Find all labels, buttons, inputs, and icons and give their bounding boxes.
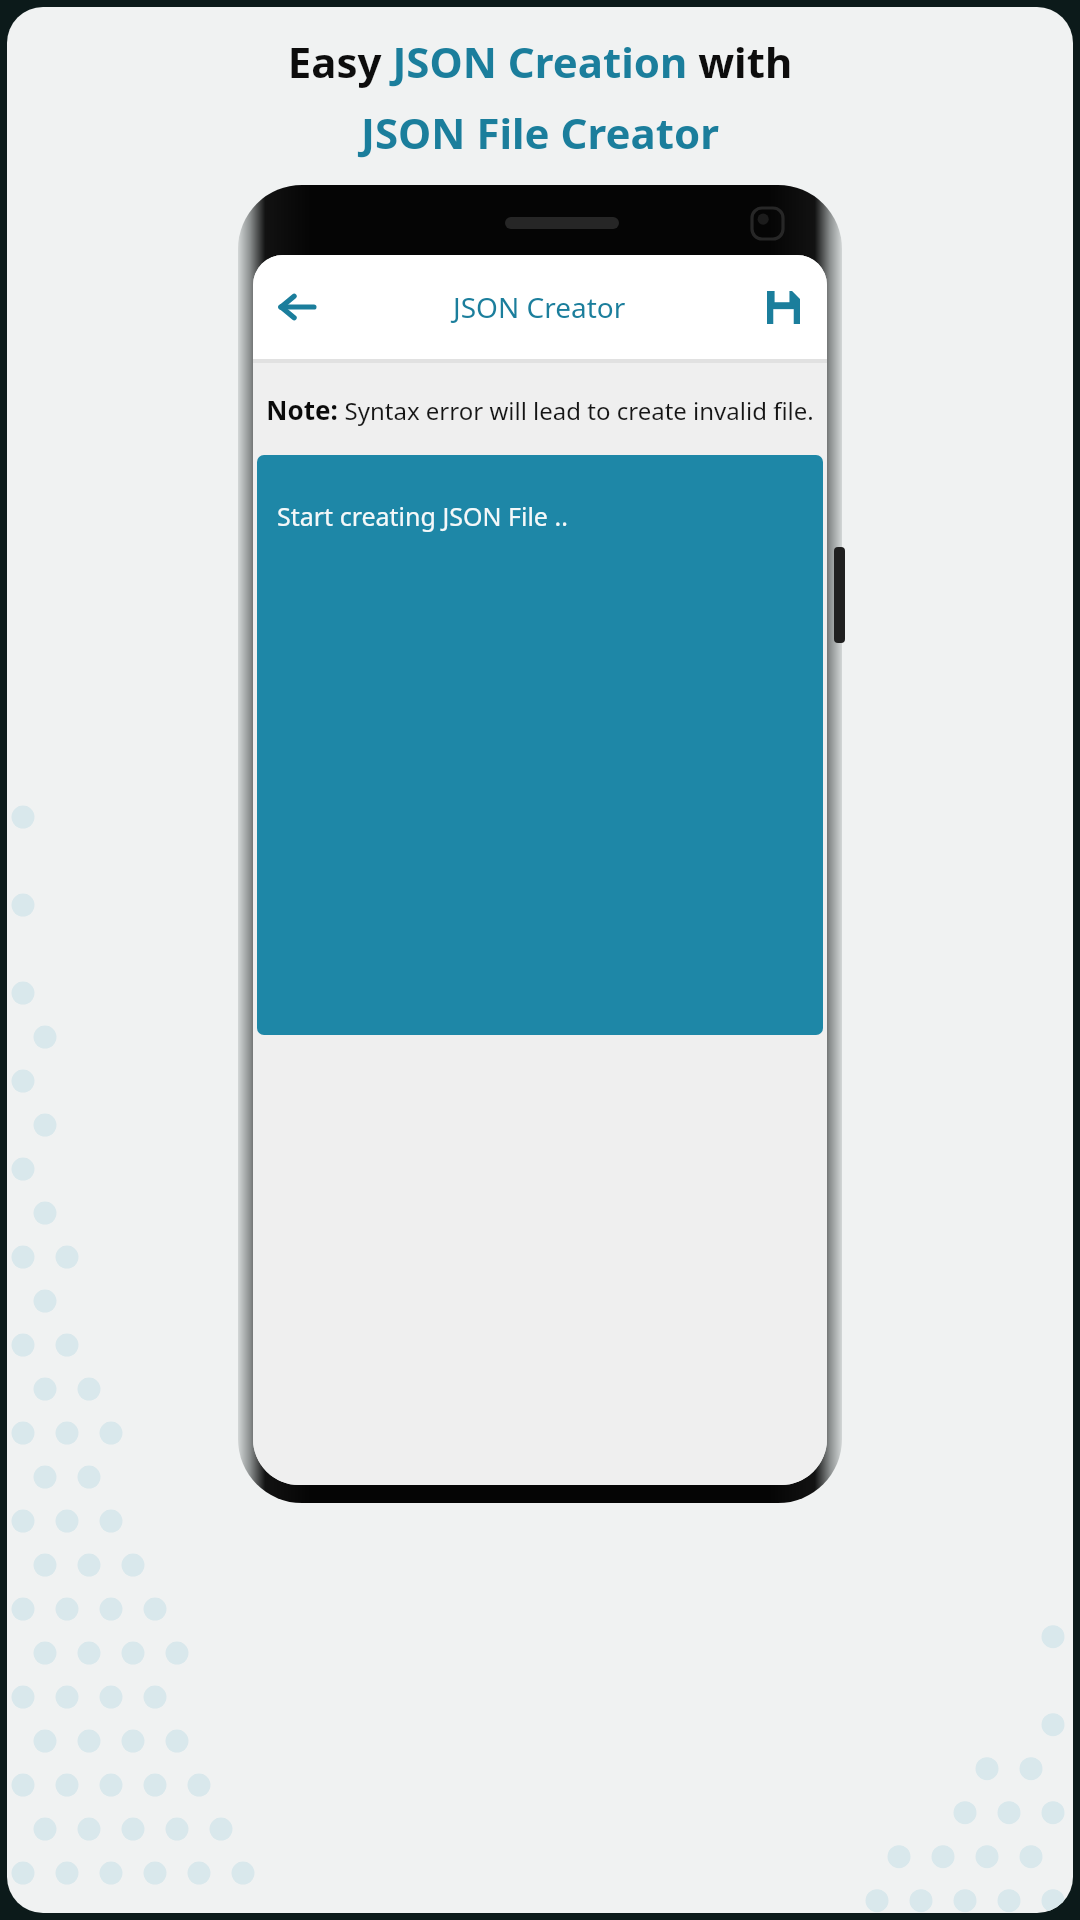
button[interactable]: Save <box>751 275 815 339</box>
staticText: Note: Syntax error will lead to create i… <box>266 392 814 427</box>
button[interactable]: Back <box>265 275 329 339</box>
staticText: JSON File Creator <box>25 104 1055 161</box>
button[interactable]: Start creating JSON File .. <box>257 455 823 1035</box>
staticText: JSON Creator <box>453 288 626 326</box>
staticText: Start creating JSON File .. <box>277 499 568 533</box>
staticText: Easy JSON Creation with <box>25 33 1055 90</box>
